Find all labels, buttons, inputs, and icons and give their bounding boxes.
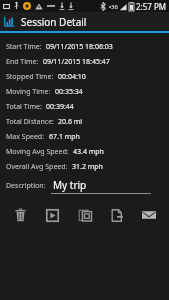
staticText: 36 — [111, 3, 118, 11]
staticText: Stopped Time: — [6, 72, 54, 82]
staticText: Overall Avg Speed: — [6, 162, 68, 172]
staticText: Moving Time: — [6, 87, 51, 97]
button[interactable]: Email — [137, 204, 161, 226]
staticText: My trip — [53, 178, 87, 192]
button[interactable]: Duplicate — [73, 204, 97, 226]
staticText: Start Time: — [6, 42, 42, 52]
button[interactable]: Play — [40, 204, 64, 226]
staticText: Total Distance: — [6, 117, 54, 127]
staticText: 31.2 mph — [72, 162, 103, 172]
staticText: 67.1 mph — [49, 132, 80, 142]
button[interactable]: Session Detail — [0, 12, 169, 31]
button[interactable]: Export — [105, 204, 129, 226]
staticText: Total Time: — [6, 102, 42, 112]
button[interactable]: My trip — [51, 178, 151, 194]
staticText: End Time: — [6, 57, 39, 67]
staticText: 00:04:10 — [58, 72, 86, 82]
staticText: 00:35:34 — [55, 87, 83, 97]
staticText: 00:39:44 — [46, 102, 74, 112]
staticText: Description: — [6, 181, 46, 191]
staticText: 43.4 mph — [73, 147, 104, 157]
staticText: Moving Avg Speed: — [6, 147, 69, 157]
staticText: Session Detail — [21, 15, 87, 29]
staticText: Max Speed: — [6, 132, 45, 142]
staticText: 09/11/2015 18:06:03 — [46, 42, 113, 52]
staticText: 2:57 PM — [136, 1, 167, 12]
staticText: 09/11/2015 18:45:47 — [43, 57, 110, 67]
staticText: 20.6 mi — [58, 117, 83, 127]
button[interactable]: Delete — [8, 204, 32, 226]
